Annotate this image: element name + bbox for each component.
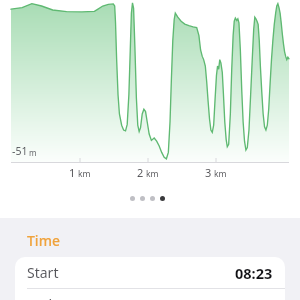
staticText: -51 <box>12 144 28 158</box>
staticText: km <box>146 168 159 180</box>
staticText: 1 <box>69 165 76 180</box>
button[interactable]: Page indicator, page 4 of 4 <box>128 194 167 203</box>
staticText: 3 <box>205 165 212 180</box>
staticText: m <box>29 147 37 158</box>
staticText: Time <box>27 231 60 250</box>
staticText: 2 <box>137 165 144 180</box>
staticText: End <box>27 295 53 300</box>
staticText: 08:23 <box>235 263 273 283</box>
button[interactable]: Start <box>15 257 285 288</box>
staticText: Start <box>27 263 59 282</box>
staticText: km <box>214 168 227 180</box>
staticText: km <box>78 168 91 180</box>
